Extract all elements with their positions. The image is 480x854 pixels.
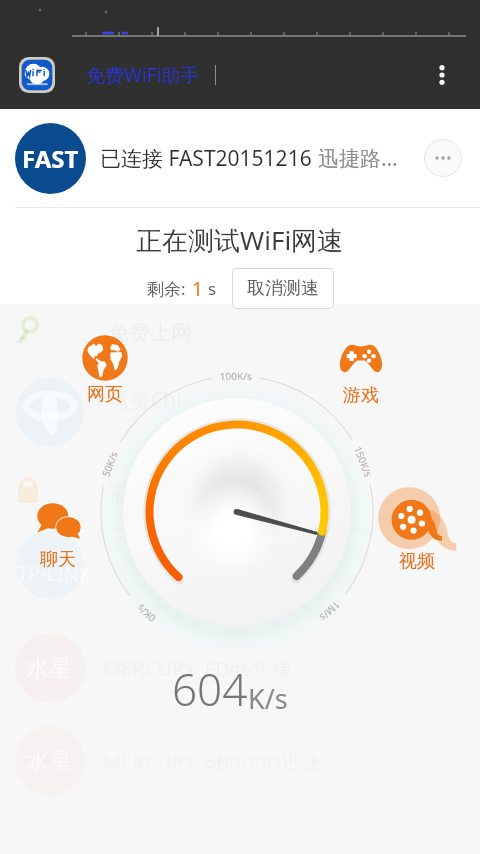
staticText: s bbox=[208, 277, 217, 300]
button[interactable]: Free WiFi assistant bbox=[19, 57, 55, 93]
staticText: 视频 bbox=[399, 550, 435, 573]
staticText: 剩余: bbox=[147, 277, 186, 300]
button[interactable]: 视频 bbox=[379, 496, 455, 573]
staticText: 已连接 FAST20151216 bbox=[100, 144, 318, 173]
button[interactable]: Network options bbox=[424, 139, 462, 177]
staticText: 聊天 bbox=[40, 548, 76, 571]
button[interactable]: 聊天 bbox=[20, 496, 96, 571]
button[interactable]: More options bbox=[416, 49, 468, 101]
button[interactable]: FAST bbox=[0, 109, 480, 207]
staticText: FAST bbox=[22, 142, 79, 175]
button[interactable]: 取消测速 bbox=[232, 268, 334, 309]
staticText: 免费WiFi助手 bbox=[86, 62, 200, 88]
button[interactable]: 游戏 bbox=[323, 332, 399, 407]
staticText: 游戏 bbox=[343, 384, 379, 407]
staticText: K/s bbox=[248, 680, 288, 717]
staticText: 604 bbox=[172, 659, 248, 719]
staticText: 取消测速 bbox=[247, 277, 319, 300]
button[interactable]: 网页 bbox=[67, 333, 143, 406]
staticText: 网页 bbox=[87, 383, 123, 406]
staticText: 迅捷路… bbox=[318, 144, 398, 173]
staticText: 1 bbox=[192, 276, 203, 302]
staticText: 正在测试WiFi网速 bbox=[136, 222, 344, 258]
